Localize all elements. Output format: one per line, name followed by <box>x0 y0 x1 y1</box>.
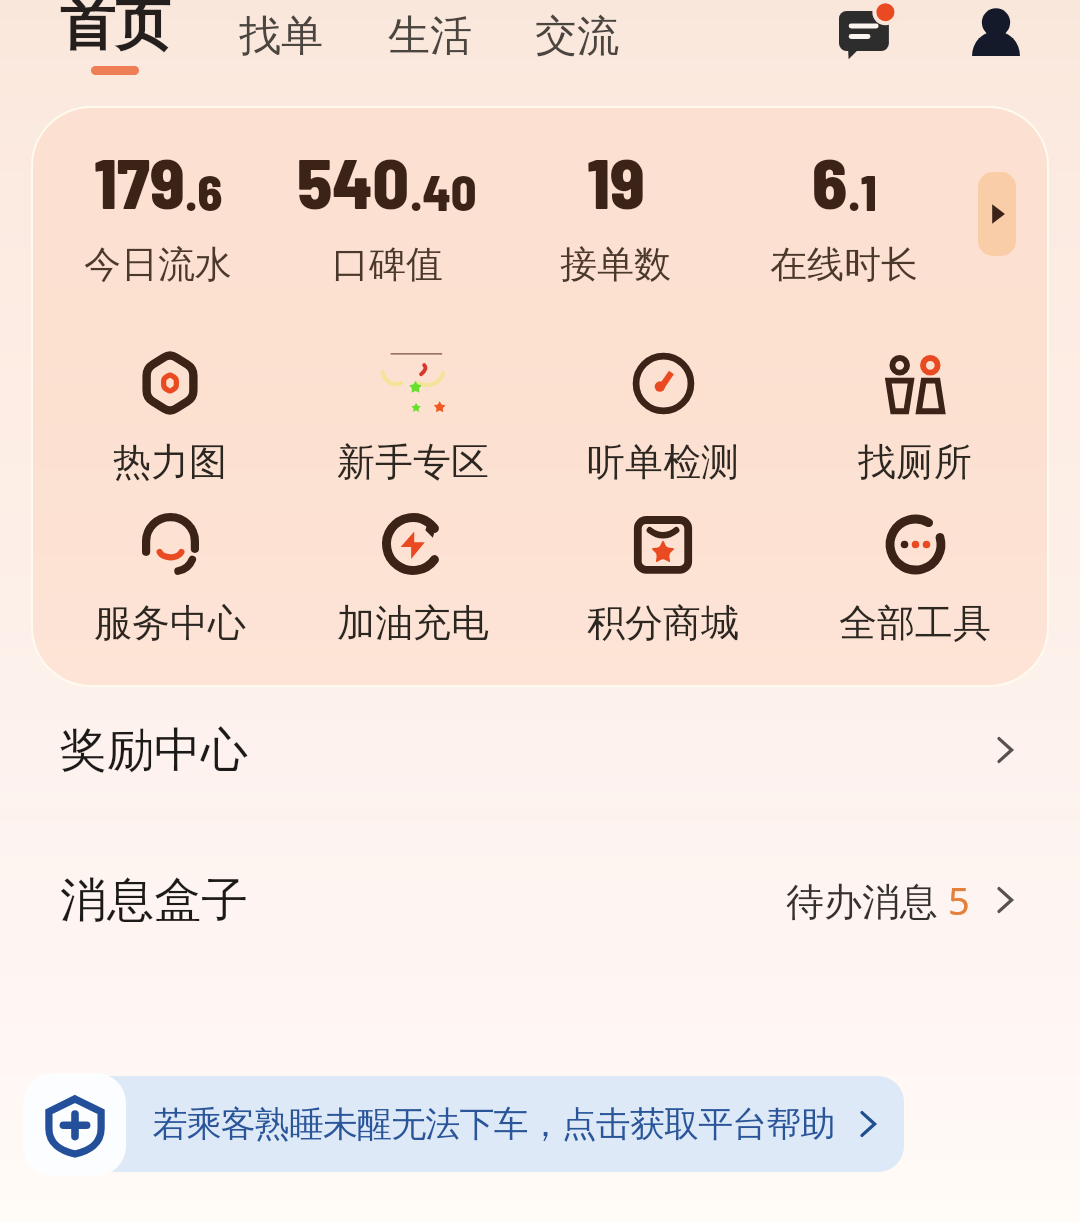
staticText: 积分商城 <box>587 599 739 647</box>
staticText: 找单 <box>239 10 323 63</box>
staticText: 新手专区 <box>337 438 489 486</box>
button[interactable]: 6 <box>730 138 958 288</box>
staticText: 若乘客熟睡未醒无法下车，点击获取平台帮助 <box>153 1102 835 1146</box>
button[interactable]: 19 <box>501 138 729 288</box>
button[interactable]: 服务中心 <box>43 513 297 647</box>
button[interactable]: 540 <box>273 138 501 288</box>
staticText: 接单数 <box>560 241 671 288</box>
button[interactable]: 新手专区 <box>286 352 540 486</box>
staticText: 消息盒子 <box>60 871 248 930</box>
staticText: 交流 <box>535 10 619 63</box>
button[interactable]: 热力图 <box>43 352 297 486</box>
staticText: 19 <box>587 138 645 223</box>
staticText: 6 <box>812 138 848 223</box>
button[interactable]: 首页 <box>60 0 170 75</box>
button[interactable]: 找单 <box>239 10 323 63</box>
button[interactable]: 加油充电 <box>286 513 540 647</box>
button[interactable]: 全部工具 <box>788 513 1042 647</box>
button[interactable]: 我的 <box>949 0 1041 92</box>
button[interactable]: 生活 <box>388 10 472 63</box>
button[interactable]: 奖励中心 <box>0 685 1080 815</box>
staticText: 540 <box>297 138 410 223</box>
button[interactable]: 消息盒子 <box>0 836 1080 964</box>
staticText: 待办消息 <box>786 874 948 926</box>
staticText: 179 <box>94 138 185 223</box>
button[interactable]: 若乘客熟睡未醒无法下车，点击获取平台帮助 <box>31 1076 904 1172</box>
staticText: 口碑值 <box>332 241 443 288</box>
button[interactable]: 听单检测 <box>536 352 790 486</box>
staticText: 在线时长 <box>770 241 918 288</box>
staticText: 5 <box>948 874 970 926</box>
staticText: 加油充电 <box>337 599 489 647</box>
staticText: .1 <box>848 161 877 221</box>
button[interactable]: 积分商城 <box>536 513 790 647</box>
button[interactable]: 179 <box>44 138 272 288</box>
staticText: 服务中心 <box>94 599 246 647</box>
button[interactable]: 交流 <box>535 10 619 63</box>
button[interactable]: 更多数据 <box>978 172 1016 256</box>
staticText: 首页 <box>60 0 170 60</box>
staticText: 奖励中心 <box>60 721 248 780</box>
staticText: .6 <box>185 161 223 221</box>
staticText: 生活 <box>388 10 472 63</box>
staticText: 今日流水 <box>84 241 232 288</box>
staticText: 全部工具 <box>839 599 991 647</box>
staticText: 找厕所 <box>858 438 972 486</box>
button[interactable]: 消息 <box>809 0 901 92</box>
staticText: .40 <box>410 161 477 221</box>
button[interactable]: 找厕所 <box>788 352 1042 486</box>
staticText: 热力图 <box>113 438 227 486</box>
staticText: 听单检测 <box>587 438 739 486</box>
